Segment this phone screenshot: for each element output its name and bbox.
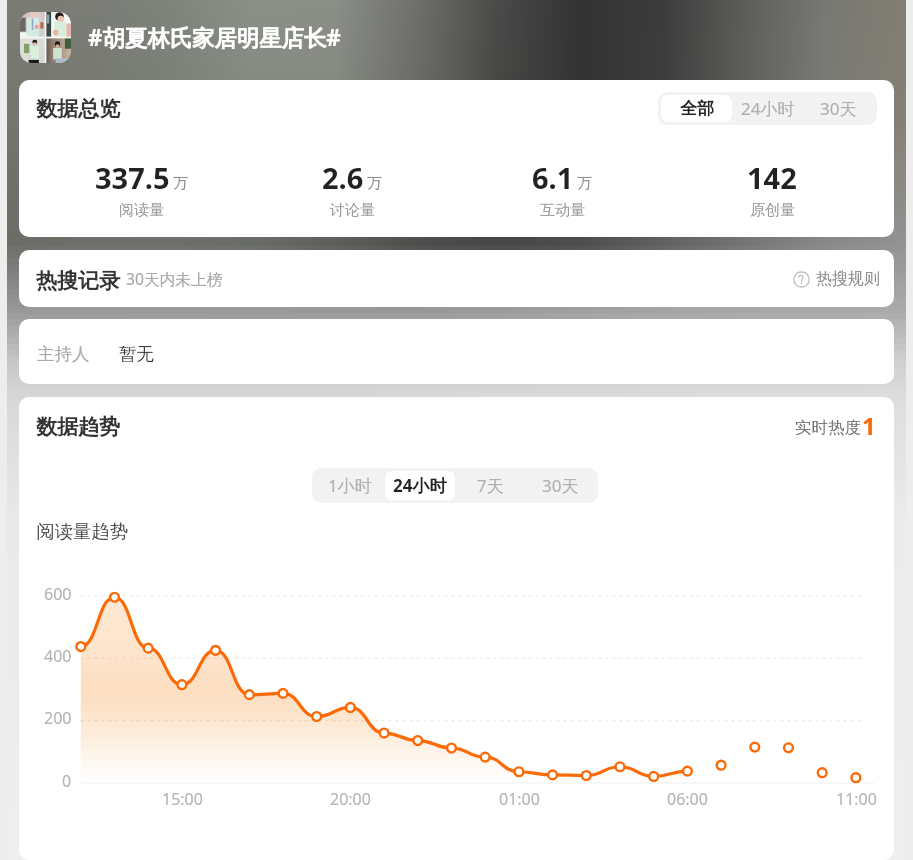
staticText: 万 [367,174,382,193]
staticText: #胡夏林氏家居明星店长# [88,22,341,53]
button[interactable]: 热搜规则 [793,269,880,289]
staticText: 数据趋势 [36,414,120,440]
staticText: 互动量 [540,201,585,220]
staticText: 热搜规则 [816,269,880,289]
staticText: 7天 [477,474,504,497]
staticText: 6.1 [532,158,574,197]
staticText: 30天 [542,474,579,497]
staticText: 2.6 [322,158,364,197]
button[interactable]: 全部 [661,95,732,122]
staticText: 11:00 [836,788,877,810]
staticText: 337.5 [95,158,170,197]
staticText: 数据总览 [36,96,120,122]
staticText: 万 [577,174,592,193]
staticText: 1小时 [328,474,372,497]
button[interactable]: 30天 [525,471,595,500]
button[interactable]: 30天 [803,95,874,122]
staticText: 01:00 [499,788,540,810]
staticText: 200 [44,707,72,729]
button[interactable]: 7天 [455,471,525,500]
staticText: 主持人 [37,343,90,365]
staticText: 600 [44,583,72,605]
staticText: 30天 [820,97,857,120]
staticText: 0 [62,770,72,792]
staticText: 原创量 [750,201,795,220]
button[interactable]: 24小时 [385,471,455,500]
staticText: 1 [862,409,876,442]
staticText: 24小时 [741,97,795,120]
staticText: 阅读量趋势 [36,520,129,543]
staticText: 30天内未上榜 [126,268,223,289]
staticText: 142 [747,158,797,197]
button[interactable]: 1小时 [315,471,385,500]
staticText: 06:00 [667,788,708,810]
staticText: 全部 [680,98,714,119]
staticText: 20:00 [330,788,371,810]
staticText: 万 [173,174,188,193]
staticText: 400 [44,645,72,667]
staticText: 24小时 [393,474,447,497]
staticText: 15:00 [162,788,203,810]
staticText: 热搜记录 [36,268,120,294]
staticText: 实时热度 [795,417,861,438]
staticText: 暂无 [119,343,154,365]
button[interactable]: 24小时 [732,95,803,122]
staticText: 讨论量 [330,201,375,220]
staticText: 阅读量 [119,201,164,220]
